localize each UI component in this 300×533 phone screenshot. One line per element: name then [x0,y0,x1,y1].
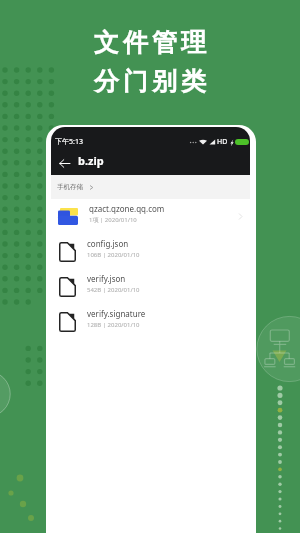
staticText: qzact.qzone.qq.com [89,203,165,214]
staticText: config.json [87,238,129,249]
button[interactable]: verify.signature [51,304,250,339]
button[interactable]: qzact.qzone.qq.com [51,199,250,234]
staticText: 分门别类 [92,66,208,97]
button[interactable]: verify.json [51,269,250,304]
staticText: HD [217,137,228,147]
staticText: 128B | 2020/01/10 [87,321,140,329]
staticText: b.zip [78,153,104,168]
button[interactable]: config.json [51,234,250,269]
staticText: verify.signature [87,308,146,319]
staticText: 下午5:13 [55,137,83,147]
staticText: 106B | 2020/01/10 [87,251,140,259]
staticText: verify.json [87,273,126,284]
button[interactable]: Back [55,153,73,173]
staticText: 542B | 2020/01/10 [87,286,140,294]
staticText: 手机存储 [57,183,83,191]
staticText: 文件管理 [92,27,208,58]
button[interactable]: 手机存储 [57,183,94,191]
staticText: 1项 | 2020/01/10 [89,216,137,224]
